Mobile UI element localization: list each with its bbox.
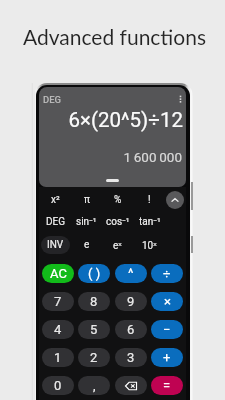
staticText: eˣ: [113, 238, 122, 252]
staticText: 2: [90, 350, 98, 365]
staticText: AC: [50, 266, 67, 281]
staticText: 5: [90, 322, 98, 337]
button[interactable]: ( ): [78, 264, 110, 283]
button[interactable]: DEG: [41, 213, 70, 231]
button[interactable]: 6: [115, 320, 147, 339]
staticText: 6: [127, 322, 135, 337]
button[interactable]: Backspace: [115, 376, 147, 395]
staticText: 0: [54, 378, 62, 393]
staticText: 7: [54, 294, 62, 309]
staticText: π: [84, 194, 90, 206]
staticText: 4: [54, 322, 62, 337]
staticText: ,: [93, 378, 96, 393]
staticText: ^: [128, 266, 134, 281]
staticText: Advanced functions: [23, 24, 207, 49]
button[interactable]: 1: [42, 348, 74, 367]
staticText: DEG: [43, 94, 62, 105]
button[interactable]: 10ˣ: [135, 236, 164, 254]
button[interactable]: −: [151, 320, 183, 339]
button[interactable]: 8: [78, 292, 110, 311]
button[interactable]: sin⁻¹: [72, 213, 101, 231]
staticText: !: [148, 194, 151, 206]
staticText: DEG: [46, 216, 66, 228]
staticText: 6×(20^5)÷12: [39, 108, 183, 132]
button[interactable]: x²: [41, 191, 70, 209]
staticText: 8: [90, 294, 98, 309]
button[interactable]: ÷: [151, 264, 183, 283]
button[interactable]: tan⁻¹: [135, 213, 164, 231]
button[interactable]: Collapse advanced functions: [166, 191, 184, 209]
button[interactable]: cos⁻¹: [103, 213, 132, 231]
button[interactable]: e: [72, 236, 101, 254]
button[interactable]: ×: [151, 292, 183, 311]
button[interactable]: AC: [42, 264, 74, 283]
button[interactable]: ^: [115, 264, 147, 283]
staticText: tan⁻¹: [139, 216, 161, 228]
button[interactable]: 4: [42, 320, 74, 339]
button[interactable]: +: [151, 348, 183, 367]
button[interactable]: More options: [174, 92, 186, 105]
staticText: sin⁻¹: [76, 216, 97, 228]
staticText: ÷: [163, 266, 171, 281]
staticText: +: [163, 350, 171, 365]
button[interactable]: 2: [78, 348, 110, 367]
staticText: cos⁻¹: [106, 216, 130, 228]
staticText: 3: [127, 350, 135, 365]
button[interactable]: ,: [78, 376, 110, 395]
button[interactable]: =: [151, 376, 183, 395]
button[interactable]: 3: [115, 348, 147, 367]
button[interactable]: Drag handle: [106, 179, 119, 182]
staticText: e: [84, 239, 90, 251]
staticText: x²: [51, 194, 60, 206]
button[interactable]: 7: [42, 292, 74, 311]
button[interactable]: 0: [42, 376, 74, 395]
button[interactable]: %: [103, 191, 132, 209]
staticText: 9: [127, 294, 135, 309]
staticText: 1: [54, 350, 62, 365]
staticText: %: [114, 194, 122, 206]
button[interactable]: 5: [78, 320, 110, 339]
staticText: −: [163, 322, 171, 337]
button[interactable]: !: [135, 191, 164, 209]
button[interactable]: π: [72, 191, 101, 209]
button[interactable]: eˣ: [103, 236, 132, 254]
staticText: =: [163, 378, 171, 393]
staticText: INV: [47, 239, 64, 251]
button[interactable]: 9: [115, 292, 147, 311]
staticText: 1 600 000: [39, 149, 182, 165]
staticText: ×: [164, 294, 171, 309]
staticText: ( ): [88, 266, 101, 281]
button[interactable]: INV: [41, 236, 70, 254]
staticText: 10ˣ: [142, 238, 157, 252]
